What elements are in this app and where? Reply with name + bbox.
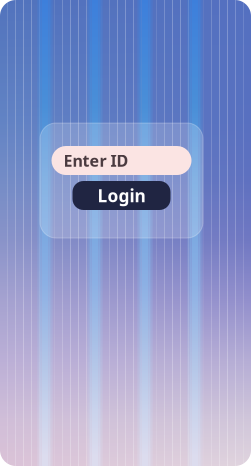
button[interactable]: Login xyxy=(72,181,170,210)
staticText: Login xyxy=(97,184,145,207)
button[interactable]: Enter ID xyxy=(51,146,191,175)
staticText: Enter ID xyxy=(63,150,128,171)
